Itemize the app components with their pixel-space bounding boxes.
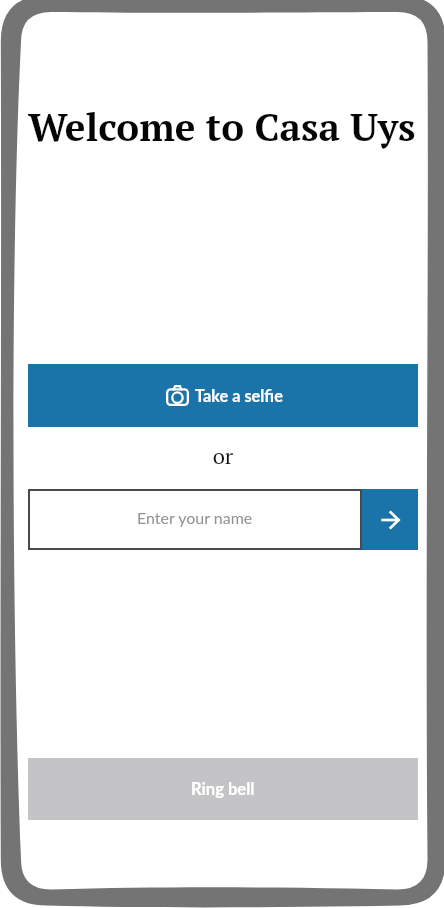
button[interactable]: Take a selfie (28, 364, 418, 427)
button[interactable]: Ring bell (28, 758, 418, 820)
staticText: or (28, 441, 418, 470)
button[interactable]: Enter your name (28, 489, 362, 550)
staticText: Enter your name (137, 508, 253, 527)
staticText: Take a selfie (195, 386, 283, 406)
staticText: Ring bell (191, 779, 255, 799)
button[interactable]: Submit name (362, 489, 418, 550)
staticText: Welcome to Casa Uys (28, 101, 416, 152)
